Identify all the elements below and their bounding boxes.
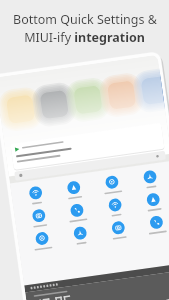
staticText: MIUI-ify integration	[24, 29, 145, 46]
staticText: Bottom Quick Settings &	[13, 11, 157, 28]
